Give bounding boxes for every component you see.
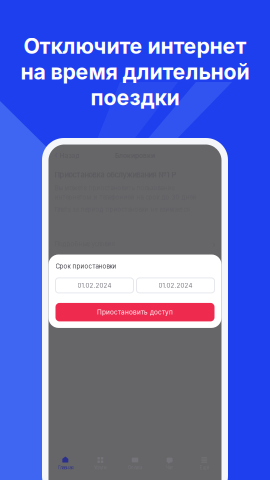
staticText: Главная xyxy=(58,465,73,470)
button[interactable]: Ещё xyxy=(187,452,221,478)
button[interactable]: 01.02.2024 xyxy=(55,278,133,293)
staticText: 01.02.2024 xyxy=(158,282,192,289)
staticText: на время длительной xyxy=(20,59,249,85)
button[interactable]: Оплата xyxy=(118,452,152,478)
button[interactable]: Главная xyxy=(48,452,83,478)
staticText: Срок приостановки xyxy=(55,262,116,270)
staticText: Приостановить доступ xyxy=(97,308,173,316)
staticText: Приостановка обслуживания №1 Р xyxy=(54,170,176,179)
staticText: Оплата xyxy=(128,465,142,470)
staticText: Услуги xyxy=(94,465,107,470)
button[interactable]: Приостановить доступ xyxy=(55,303,214,321)
staticText: Блокировки xyxy=(115,151,155,160)
staticText: поездки xyxy=(90,85,179,110)
button[interactable]: 01.02.2024 xyxy=(136,278,214,293)
staticText: 01.02.2024 xyxy=(77,282,111,289)
staticText: Отключите интернет xyxy=(23,33,246,59)
